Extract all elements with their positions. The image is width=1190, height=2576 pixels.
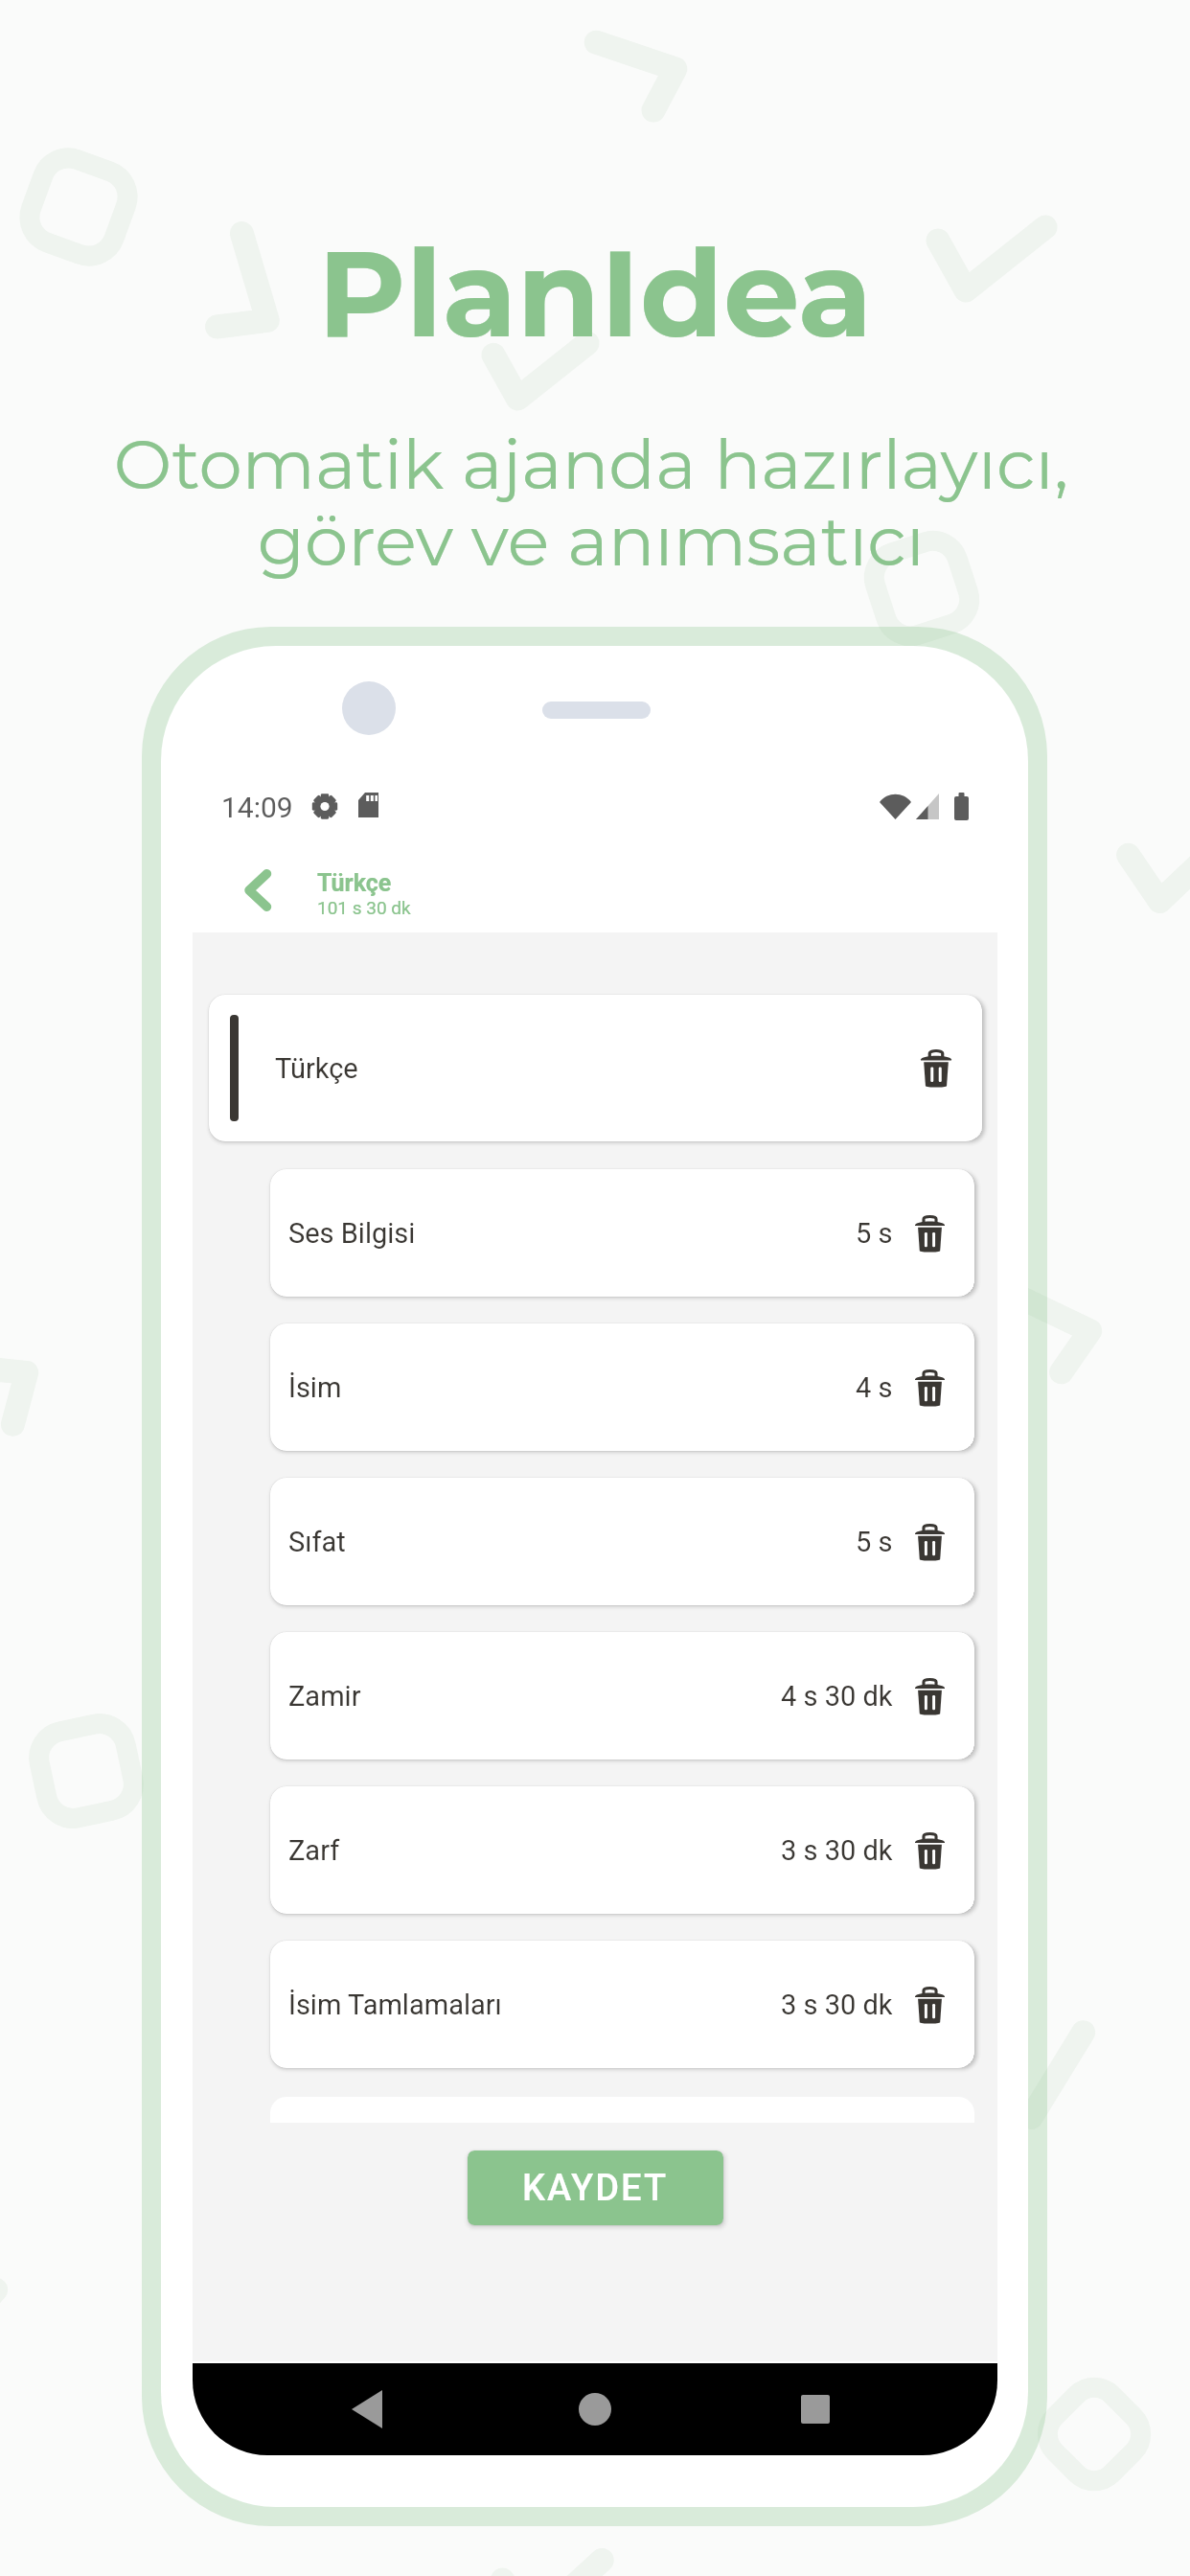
button[interactable]: Back: [212, 848, 300, 932]
staticText: 3 s 30 dk: [781, 1834, 893, 1867]
button[interactable]: Ses Bilgisi: [270, 1169, 974, 1297]
staticText: 4 s 30 dk: [781, 1680, 893, 1713]
button[interactable]: Delete Zamir: [893, 1660, 966, 1733]
button[interactable]: Delete Zarf: [893, 1814, 966, 1887]
button[interactable]: Delete İsim Tamlamaları: [893, 1968, 966, 2041]
staticText: İsim: [288, 1371, 342, 1404]
button[interactable]: Delete Ses Bilgisi: [893, 1197, 966, 1270]
staticText: 5 s: [856, 1217, 893, 1250]
staticText: 101 s 30 dk: [317, 897, 411, 918]
staticText: 4 s: [856, 1371, 893, 1404]
staticText: KAYDET: [522, 2167, 669, 2210]
button[interactable]: Delete İsim: [893, 1351, 966, 1424]
button[interactable]: İsim: [270, 1323, 974, 1451]
button[interactable]: İsim Tamlamaları: [270, 1941, 974, 2068]
staticText: Türkçe: [275, 1052, 358, 1085]
staticText: Türkçe: [317, 869, 392, 897]
staticText: Ses Bilgisi: [288, 1217, 416, 1250]
staticText: İsim Tamlamaları: [288, 1989, 502, 2021]
staticText: Otomatik ajanda hazırlayıcı, görev ve an…: [0, 422, 1186, 583]
button[interactable]: KAYDET: [468, 2150, 723, 2225]
staticText: 14:09: [221, 791, 293, 824]
staticText: 3 s 30 dk: [781, 1989, 893, 2021]
staticText: Sıfat: [288, 1526, 346, 1558]
button[interactable]: Zarf: [270, 1786, 974, 1914]
staticText: Zamir: [288, 1680, 361, 1713]
staticText: PlanIdea: [0, 219, 1190, 367]
button[interactable]: Sıfat: [270, 1478, 974, 1605]
button[interactable]: Delete Sıfat: [893, 1506, 966, 1578]
button[interactable]: Zamir: [270, 1632, 974, 1759]
staticText: 5 s: [856, 1526, 893, 1558]
button[interactable]: Delete Türkçe: [900, 1032, 973, 1105]
staticText: Zarf: [288, 1834, 340, 1867]
button[interactable]: Türkçe: [209, 995, 982, 1141]
